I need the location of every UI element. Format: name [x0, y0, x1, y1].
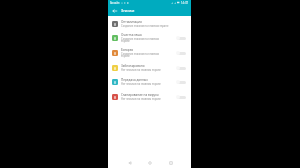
staticText: Батарея — [121, 48, 134, 52]
button[interactable]: Переключатель — [176, 65, 186, 71]
staticText: Заблокировано — [121, 64, 145, 68]
staticText: Значки — [121, 8, 135, 13]
button[interactable]: Переключатель — [176, 35, 186, 41]
button[interactable]: Оптимизация — [108, 16, 191, 31]
staticText: Оптимизация — [121, 20, 142, 24]
button[interactable]: Назад — [108, 5, 121, 16]
staticText: Сканирование на вирусы — [121, 93, 159, 97]
button[interactable]: Назад — [123, 156, 137, 168]
button[interactable]: Заблокировано — [108, 60, 191, 75]
button[interactable]: Главный экран — [143, 156, 157, 168]
staticText: Передача данных — [121, 78, 148, 82]
staticText: 14:37 — [181, 1, 189, 5]
staticText: Билайн — [110, 1, 120, 5]
button[interactable]: Переключатель — [176, 50, 186, 56]
staticText: Очистка кэша — [121, 33, 142, 37]
staticText: Нет значков на главном экране — [121, 97, 161, 101]
staticText: Нет значков на главном экране — [121, 68, 161, 72]
button[interactable]: Переключатель — [176, 94, 186, 100]
staticText: Создание значков на главном экране — [121, 52, 166, 58]
button[interactable]: Батарея — [108, 45, 191, 60]
button[interactable]: Переключатель — [176, 79, 186, 85]
staticText: Создание значков на главном экране — [121, 37, 166, 43]
button[interactable]: Сканирование на вирусы — [108, 89, 191, 104]
button[interactable]: Очистка кэша — [108, 30, 191, 45]
button[interactable]: Передача данных — [108, 74, 191, 89]
staticText: Нет значков на главном экране — [121, 82, 161, 86]
staticText: Создание значков на главном экране — [121, 24, 169, 28]
button[interactable]: Обзор — [164, 156, 178, 168]
